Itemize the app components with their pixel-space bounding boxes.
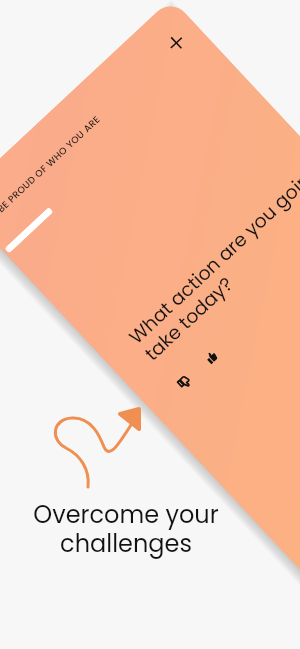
button[interactable]: Dislike xyxy=(176,374,193,391)
button[interactable]: Like xyxy=(203,349,220,366)
staticText: What action are you going to take today? xyxy=(123,152,300,367)
staticText: Overcome your challenges xyxy=(6,498,246,561)
button[interactable]: Add xyxy=(162,29,190,57)
button[interactable]: Add xyxy=(0,0,300,609)
staticText: BE PROUD OF WHO YOU ARE xyxy=(0,113,103,215)
